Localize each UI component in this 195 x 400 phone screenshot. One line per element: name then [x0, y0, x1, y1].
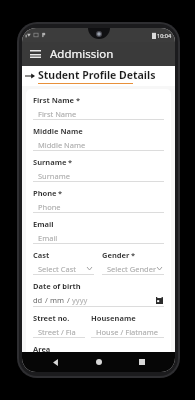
staticText: Phone — [33, 188, 57, 198]
button[interactable]: Student Profile Details — [25, 68, 156, 84]
button[interactable]: Back — [45, 352, 65, 372]
button[interactable]: Pick date — [155, 296, 164, 305]
button[interactable]: Surname — [33, 157, 164, 188]
staticText: Date of birth — [33, 281, 81, 291]
button[interactable]: Middle Name — [33, 126, 164, 157]
staticText: * — [131, 250, 136, 260]
staticText: Street no. — [33, 313, 70, 323]
button[interactable]: Open navigation menu — [26, 45, 44, 63]
staticText: Addmission — [50, 46, 114, 62]
button[interactable]: Gender — [102, 250, 164, 281]
staticText: Select Cast — [38, 264, 77, 274]
button[interactable]: First Name — [33, 95, 164, 126]
button[interactable]: Area — [33, 344, 164, 352]
button[interactable]: Date of birth — [33, 281, 164, 313]
staticText: House / Flatname — [96, 327, 159, 337]
button[interactable]: Street no. — [33, 313, 85, 344]
staticText: Housename — [91, 313, 136, 323]
staticText: / — [43, 295, 50, 305]
staticText: Student Profile Details — [38, 68, 156, 82]
staticText: Cast — [33, 250, 50, 260]
staticText: * — [68, 157, 73, 167]
staticText: Gender — [102, 250, 130, 260]
staticText: / — [65, 295, 72, 305]
staticText: Surname — [38, 171, 70, 181]
staticText: Area — [33, 344, 51, 352]
staticText: Middle Name — [33, 126, 83, 136]
button[interactable]: Phone — [33, 188, 164, 219]
staticText: mm — [50, 295, 65, 305]
staticText: Surname — [33, 157, 67, 167]
button[interactable]: Housename — [91, 313, 164, 344]
staticText: 10:04 — [157, 32, 172, 39]
button[interactable]: Recent apps — [132, 352, 152, 372]
staticText: dd — [33, 295, 43, 305]
staticText: * — [76, 95, 81, 105]
button[interactable]: Cast — [33, 250, 94, 281]
staticText: First Name — [38, 109, 77, 119]
staticText: Middle Name — [38, 140, 86, 150]
staticText: Email — [33, 219, 54, 229]
button[interactable]: Home — [89, 352, 109, 372]
staticText: Phone — [38, 202, 61, 212]
staticText: Street / Fla — [38, 327, 76, 337]
staticText: Email — [38, 233, 58, 243]
staticText: * — [58, 188, 63, 198]
staticText: yyyy — [72, 295, 88, 305]
button[interactable]: Email — [33, 219, 164, 250]
staticText: First Name — [33, 95, 75, 105]
staticText: Select Gender — [107, 264, 157, 274]
